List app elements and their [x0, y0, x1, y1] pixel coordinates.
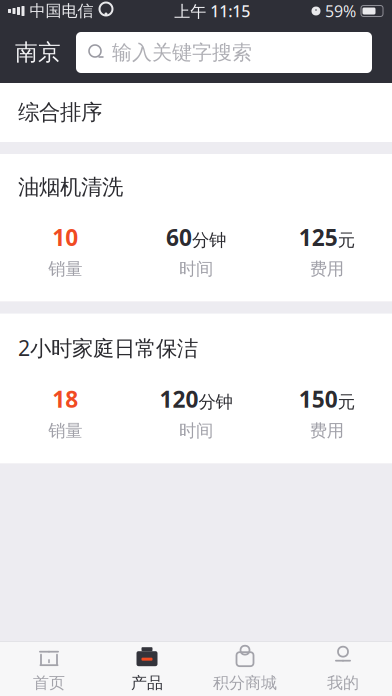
- staticText: 费用: [310, 420, 344, 441]
- staticText: 元: [338, 230, 355, 251]
- staticText: 上午 11:15: [174, 0, 250, 22]
- button[interactable]: 首页: [0, 642, 98, 696]
- button[interactable]: 2小时家庭日常保洁: [0, 314, 392, 463]
- button[interactable]: 我的: [294, 642, 392, 696]
- staticText: 销量: [48, 420, 82, 441]
- staticText: 150: [299, 384, 338, 414]
- staticText: 首页: [33, 673, 65, 693]
- staticText: 油烟机清洗: [18, 174, 123, 200]
- staticText: 综合排序: [18, 99, 102, 126]
- staticText: 时间: [179, 420, 213, 441]
- staticText: 费用: [310, 258, 344, 280]
- staticText: 产品: [131, 673, 163, 693]
- staticText: 积分商城: [213, 673, 277, 693]
- button[interactable]: 输入关键字搜索: [76, 32, 372, 73]
- button[interactable]: 油烟机清洗: [0, 154, 392, 302]
- staticText: 我的: [327, 673, 359, 693]
- button[interactable]: 产品: [98, 642, 196, 696]
- staticText: 元: [338, 391, 355, 413]
- staticText: 59%: [325, 0, 356, 22]
- staticText: 销量: [48, 258, 82, 280]
- button[interactable]: 南京: [0, 30, 76, 74]
- staticText: 10: [52, 222, 78, 252]
- staticText: 60: [166, 222, 192, 252]
- staticText: 分钟: [192, 230, 226, 251]
- button[interactable]: 积分商城: [196, 642, 294, 696]
- button[interactable]: 综合排序: [0, 83, 392, 142]
- staticText: 中国电信: [29, 1, 93, 21]
- staticText: 125: [299, 222, 338, 252]
- staticText: 2小时家庭日常保洁: [18, 334, 198, 362]
- staticText: 输入关键字搜索: [112, 40, 252, 65]
- staticText: 时间: [179, 258, 213, 280]
- staticText: 南京: [15, 39, 61, 66]
- staticText: 18: [52, 384, 78, 414]
- staticText: 120: [159, 384, 198, 414]
- staticText: 分钟: [198, 391, 232, 413]
